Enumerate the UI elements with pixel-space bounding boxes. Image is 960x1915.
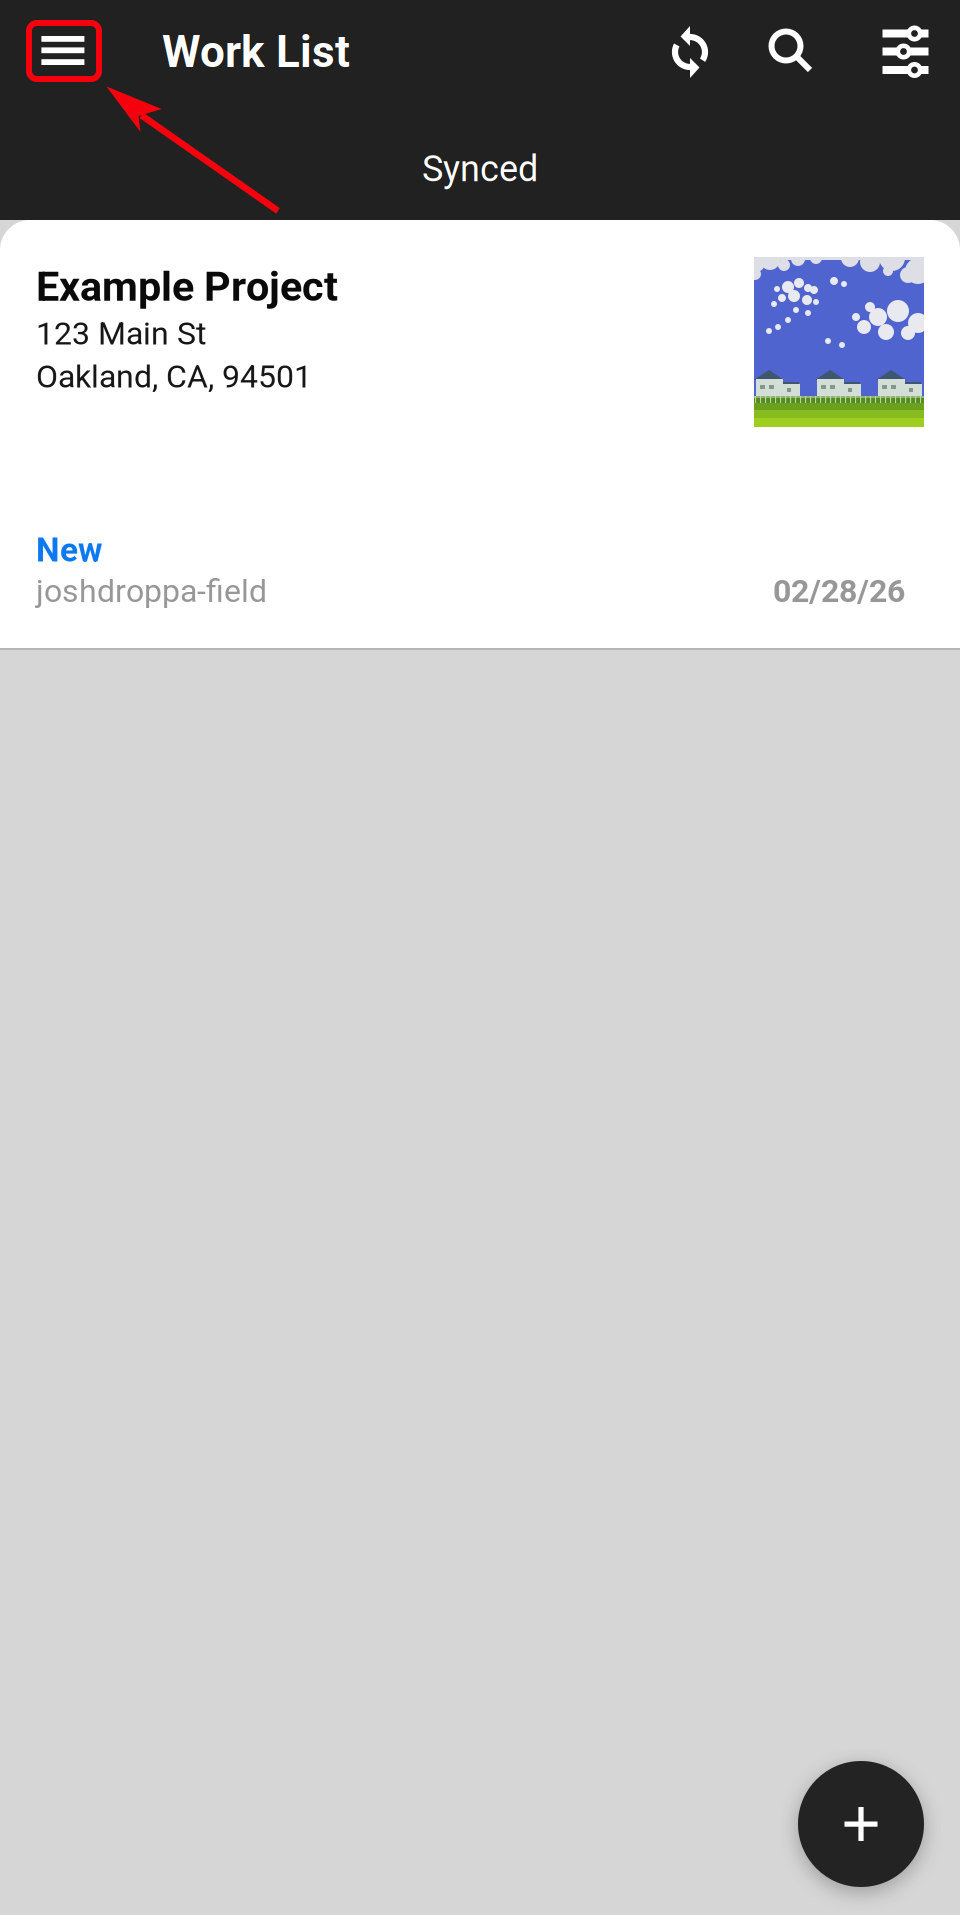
button[interactable]: Sync bbox=[648, 0, 732, 104]
staticText: Synced bbox=[422, 148, 538, 190]
staticText: Example Project bbox=[36, 262, 338, 311]
staticText: New bbox=[36, 530, 102, 570]
staticText: 02/28/26 bbox=[773, 572, 905, 610]
button[interactable]: Example Project bbox=[0, 220, 960, 650]
button[interactable]: Search bbox=[732, 0, 852, 104]
button[interactable]: Menu bbox=[0, 0, 162, 104]
staticText: 123 Main St bbox=[36, 315, 206, 352]
staticText: Work List bbox=[162, 26, 350, 78]
button[interactable]: New work order bbox=[798, 1761, 924, 1887]
staticText: joshdroppa-field bbox=[36, 572, 267, 610]
button[interactable]: Filter bbox=[852, 0, 959, 104]
staticText: Oakland, CA, 94501 bbox=[36, 358, 312, 395]
